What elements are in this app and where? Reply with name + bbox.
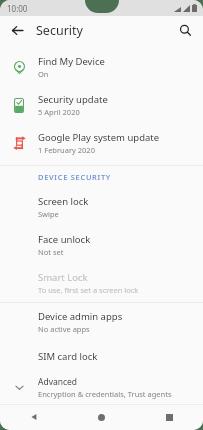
staticText: Face unlock [38, 233, 91, 246]
button[interactable]: SIM card lock [0, 341, 203, 371]
staticText: Security [36, 22, 83, 39]
staticText: Device admin apps [38, 310, 123, 323]
staticText: Advanced [38, 376, 78, 388]
staticText: 1 February 2020 [38, 145, 95, 155]
button[interactable]: Advanced [0, 371, 203, 404]
button[interactable]: Google Play system update [0, 124, 203, 162]
button[interactable]: Smart Lock [0, 264, 203, 302]
button[interactable]: Screen lock [0, 188, 203, 226]
staticText: 5 April 2020 [38, 107, 80, 117]
staticText: Encryption & credentials, Trust agents [38, 389, 172, 399]
staticText: 10:00 [7, 3, 28, 14]
staticText: Swipe [38, 209, 59, 219]
button[interactable]: Back [4, 17, 30, 43]
button[interactable]: Device admin apps [0, 303, 203, 341]
staticText: Find My Device [38, 55, 105, 68]
button[interactable]: Face unlock [0, 226, 203, 264]
staticText: Not set [38, 247, 64, 257]
staticText: Security update [38, 93, 108, 106]
staticText: To use, first set a screen lock [38, 285, 139, 295]
staticText: SIM card lock [38, 350, 98, 363]
staticText: No active apps [38, 324, 90, 334]
staticText: Smart Lock [38, 271, 88, 284]
button[interactable]: Recents [135, 404, 203, 430]
staticText: DEVICE SECURITY [38, 172, 111, 182]
button[interactable]: Home [67, 404, 135, 430]
button[interactable]: Search [172, 17, 198, 43]
staticText: Screen lock [38, 195, 89, 208]
staticText: On [38, 69, 49, 79]
staticText: Google Play system update [38, 131, 160, 144]
button[interactable]: Security update [0, 86, 203, 124]
button[interactable]: Find My Device [0, 48, 203, 86]
button[interactable]: Back [0, 404, 67, 430]
